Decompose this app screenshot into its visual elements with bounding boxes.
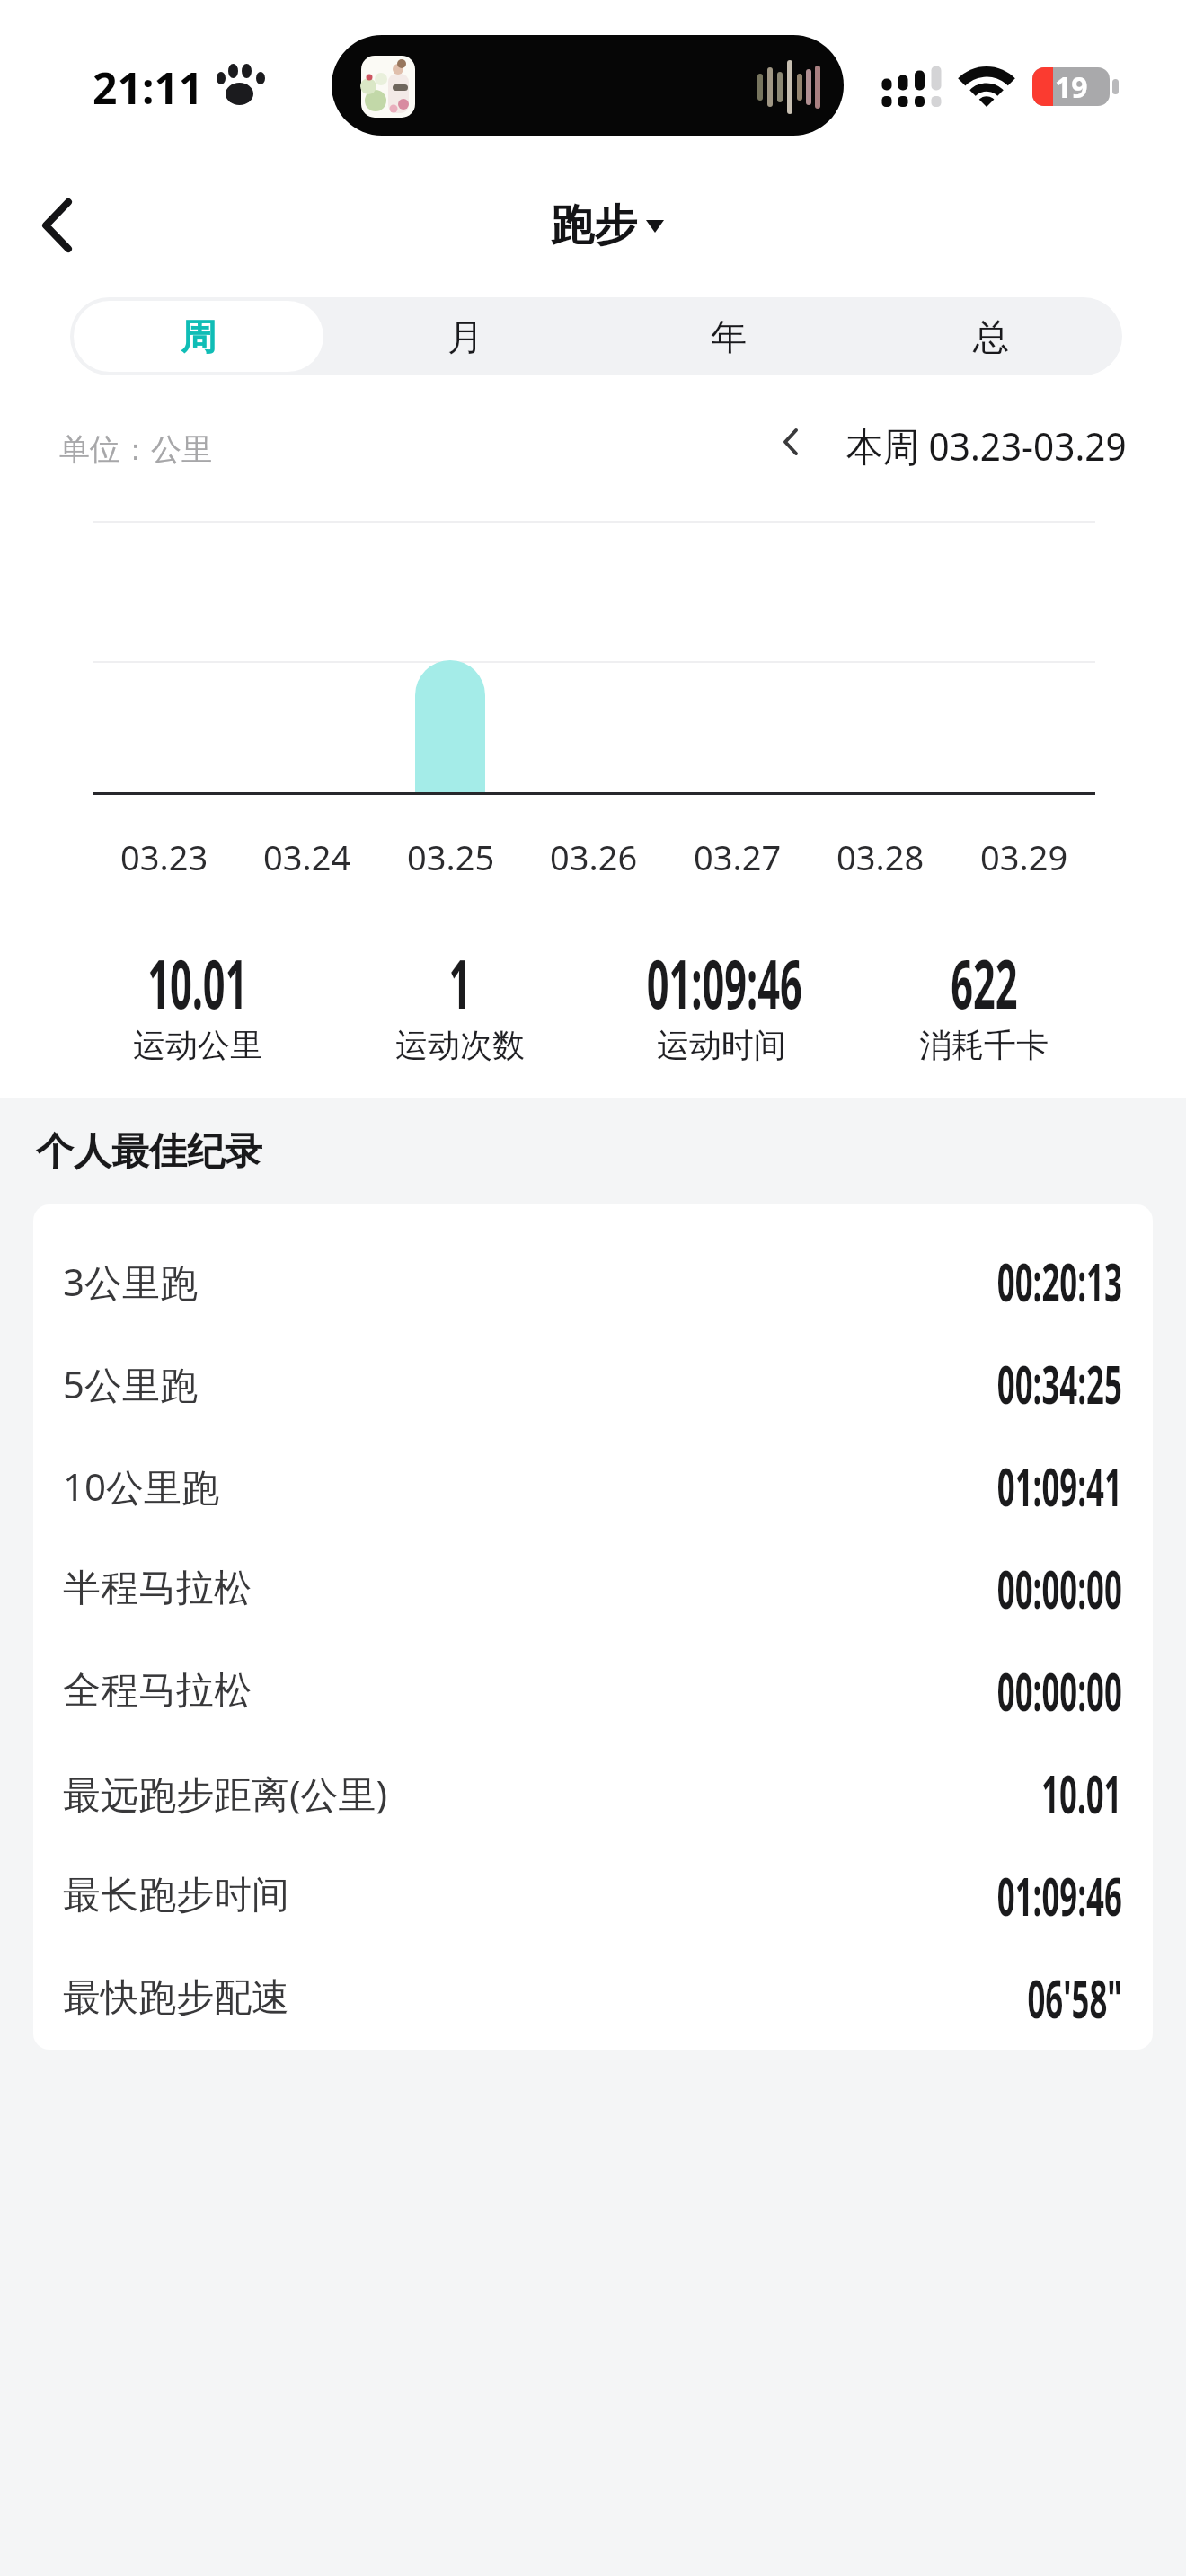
button[interactable] (27, 184, 108, 265)
staticText: 03.27 (694, 834, 782, 877)
staticText: 03.23 (120, 834, 208, 877)
staticText: 03.28 (836, 834, 925, 877)
staticText: 00:34:25 (997, 1346, 1122, 1420)
staticText: 06'58" (1027, 1961, 1122, 2034)
staticText: 10.01 (1041, 1756, 1122, 1830)
button[interactable]: 半程马拉松 (33, 1537, 1153, 1639)
staticText: 03.26 (550, 834, 638, 877)
staticText: 03.24 (263, 834, 351, 877)
button[interactable]: 5公里跑 (33, 1332, 1153, 1434)
button[interactable]: 最长跑步时间 (33, 1844, 1153, 1946)
staticText: 21:11 (93, 58, 204, 117)
button[interactable]: 周 (74, 301, 323, 372)
staticText: 03.25 (407, 834, 495, 877)
staticText: 03.29 (980, 834, 1068, 877)
staticText: 月 (447, 314, 483, 359)
staticText: 本周 03.23-03.29 (846, 419, 1127, 463)
staticText: 周 (181, 314, 217, 359)
staticText: 10公里跑 (63, 1460, 220, 1512)
staticText: 19 (1055, 67, 1088, 106)
staticText: 00:00:00 (997, 1551, 1122, 1625)
button[interactable]: 总 (859, 297, 1122, 375)
staticText: 10.01 (147, 936, 248, 1017)
button[interactable]: 本周 03.23-03.29 (809, 419, 1127, 463)
button[interactable]: 月 (333, 297, 597, 375)
staticText: 1 (449, 936, 471, 1017)
staticText: 运动时间 (657, 1025, 786, 1065)
staticText: 最远跑步距离(公里) (63, 1768, 388, 1819)
staticText: 消耗千卡 (919, 1025, 1049, 1065)
button[interactable]: 最快跑步配速 (33, 1946, 1153, 2049)
staticText: 622 (951, 936, 1018, 1017)
staticText: 3公里跑 (63, 1256, 199, 1307)
staticText: 最长跑步时间 (63, 1872, 289, 1919)
staticText: 全程马拉松 (63, 1667, 252, 1715)
button[interactable]: 年 (597, 297, 860, 375)
staticText: 总 (973, 314, 1009, 359)
button[interactable]: 最远跑步距离(公里) (33, 1742, 1153, 1844)
staticText: 5公里跑 (63, 1358, 199, 1409)
staticText: 跑步 (551, 198, 637, 252)
staticText: 运动公里 (133, 1025, 262, 1065)
button[interactable]: 3公里跑 (33, 1230, 1153, 1332)
staticText: 00:00:00 (997, 1654, 1122, 1727)
button[interactable]: 10公里跑 (33, 1434, 1153, 1537)
button[interactable]: 跑步 (504, 198, 684, 253)
staticText: 半程马拉松 (63, 1565, 252, 1612)
staticText: 运动次数 (395, 1025, 525, 1065)
staticText: 00:20:13 (997, 1244, 1122, 1318)
staticText: 年 (711, 314, 747, 359)
staticText: 个人最佳纪录 (36, 1128, 262, 1175)
staticText: 01:09:46 (997, 1858, 1122, 1932)
staticText: 01:09:46 (647, 936, 796, 1017)
staticText: 01:09:41 (997, 1449, 1122, 1522)
button[interactable]: 全程马拉松 (33, 1639, 1153, 1742)
staticText: 单位：公里 (59, 430, 212, 469)
staticText: 最快跑步配速 (63, 1974, 289, 2022)
